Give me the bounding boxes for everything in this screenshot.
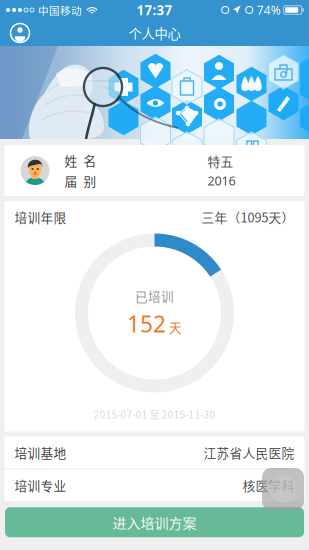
staticText: 核医学科: [242, 476, 294, 494]
button[interactable]: Profile: [0, 20, 40, 46]
staticText: 天: [169, 318, 182, 336]
staticText: 2016: [207, 172, 235, 189]
staticText: 个人中心: [128, 23, 180, 43]
staticText: 进入培训方案: [112, 512, 196, 532]
staticText: 74%: [257, 2, 281, 18]
staticText: 江苏省人民医院: [203, 443, 294, 462]
staticText: 培训专业: [14, 476, 66, 494]
staticText: 届 别: [64, 171, 96, 190]
staticText: 特五: [207, 152, 233, 170]
button[interactable]: 进入培训方案: [5, 507, 304, 537]
staticText: 17:37: [136, 1, 172, 19]
staticText: 姓 名: [64, 151, 96, 169]
staticText: 中国移动: [38, 2, 82, 18]
staticText: 2015-07-01 至 2015-11-30: [93, 407, 215, 421]
staticText: 培训基地: [14, 443, 66, 462]
staticText: 培训年限: [14, 208, 66, 226]
staticText: 152: [127, 308, 166, 339]
staticText: 已培训: [135, 287, 174, 305]
staticText: 三年（1095天）: [201, 208, 294, 226]
